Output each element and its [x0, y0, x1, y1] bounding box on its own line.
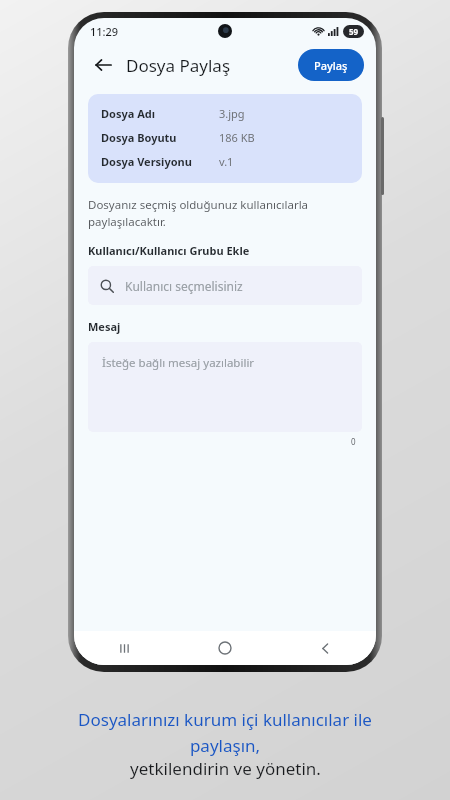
staticText: Dosyalarınızı kurum içi kullanıcılar ile… [78, 708, 372, 757]
staticText: yetkilendirin ve yönetin. [130, 757, 321, 780]
button[interactable]: Back [88, 50, 118, 80]
staticText: Kullanıcı seçmelisiniz [125, 278, 243, 294]
staticText: Dosya Boyutu [101, 130, 177, 145]
staticText: 3.jpg [219, 106, 245, 121]
staticText: 11:29 [90, 24, 119, 39]
button[interactable]: Kullanıcı seçmelisiniz [88, 266, 362, 305]
button[interactable]: Home [174, 631, 275, 665]
staticText: Dosya Versiyonu [101, 154, 192, 169]
staticText: Paylaş [314, 58, 348, 73]
staticText: İsteğe bağlı mesaj yazılabilir [102, 355, 255, 371]
staticText: 186 KB [219, 130, 255, 145]
button[interactable]: İsteğe bağlı mesaj yazılabilir [88, 342, 362, 432]
staticText: 0 [351, 436, 356, 447]
button[interactable]: Back [275, 631, 376, 665]
staticText: Kullanıcı/Kullanıcı Grubu Ekle [88, 243, 362, 258]
staticText: Mesaj [88, 319, 362, 334]
button[interactable]: Recents [74, 631, 174, 665]
staticText: Dosyanız seçmiş olduğunuz kullanıcılarla… [88, 197, 362, 230]
staticText: Dosya Paylaş [126, 54, 231, 77]
staticText: v.1 [219, 154, 234, 169]
staticText: 59 [349, 26, 359, 37]
staticText: Dosya Adı [101, 106, 156, 121]
button[interactable]: Paylaş [298, 49, 364, 81]
